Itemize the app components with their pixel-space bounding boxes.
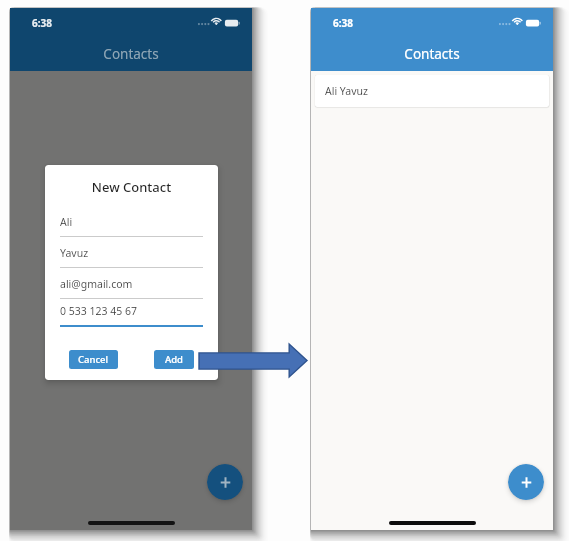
button[interactable]: Cancel <box>69 350 118 369</box>
staticText: Contacts <box>10 45 252 63</box>
staticText: Ali <box>60 215 73 229</box>
button[interactable]: Ali <box>60 215 203 239</box>
staticText: Add <box>165 353 184 366</box>
staticText: Yavuz <box>60 246 89 260</box>
staticText: Contacts <box>311 45 553 63</box>
button[interactable]: Add contact <box>508 464 544 500</box>
button[interactable]: 0 533 123 45 67 <box>60 304 203 328</box>
button[interactable]: ali@gmail.com <box>60 277 203 301</box>
staticText: Ali Yavuz <box>325 84 368 98</box>
staticText: 0 533 123 45 67 <box>60 304 137 318</box>
button[interactable]: Yavuz <box>60 246 203 270</box>
staticText: ali@gmail.com <box>60 277 133 291</box>
staticText: New Contact <box>45 178 218 196</box>
staticText: 6:38 <box>333 16 353 30</box>
staticText: Cancel <box>78 353 109 366</box>
button[interactable]: Add contact <box>207 464 243 500</box>
button[interactable]: Ali Yavuz <box>315 75 549 107</box>
button[interactable]: Add <box>154 350 194 369</box>
staticText: 6:38 <box>32 16 52 30</box>
